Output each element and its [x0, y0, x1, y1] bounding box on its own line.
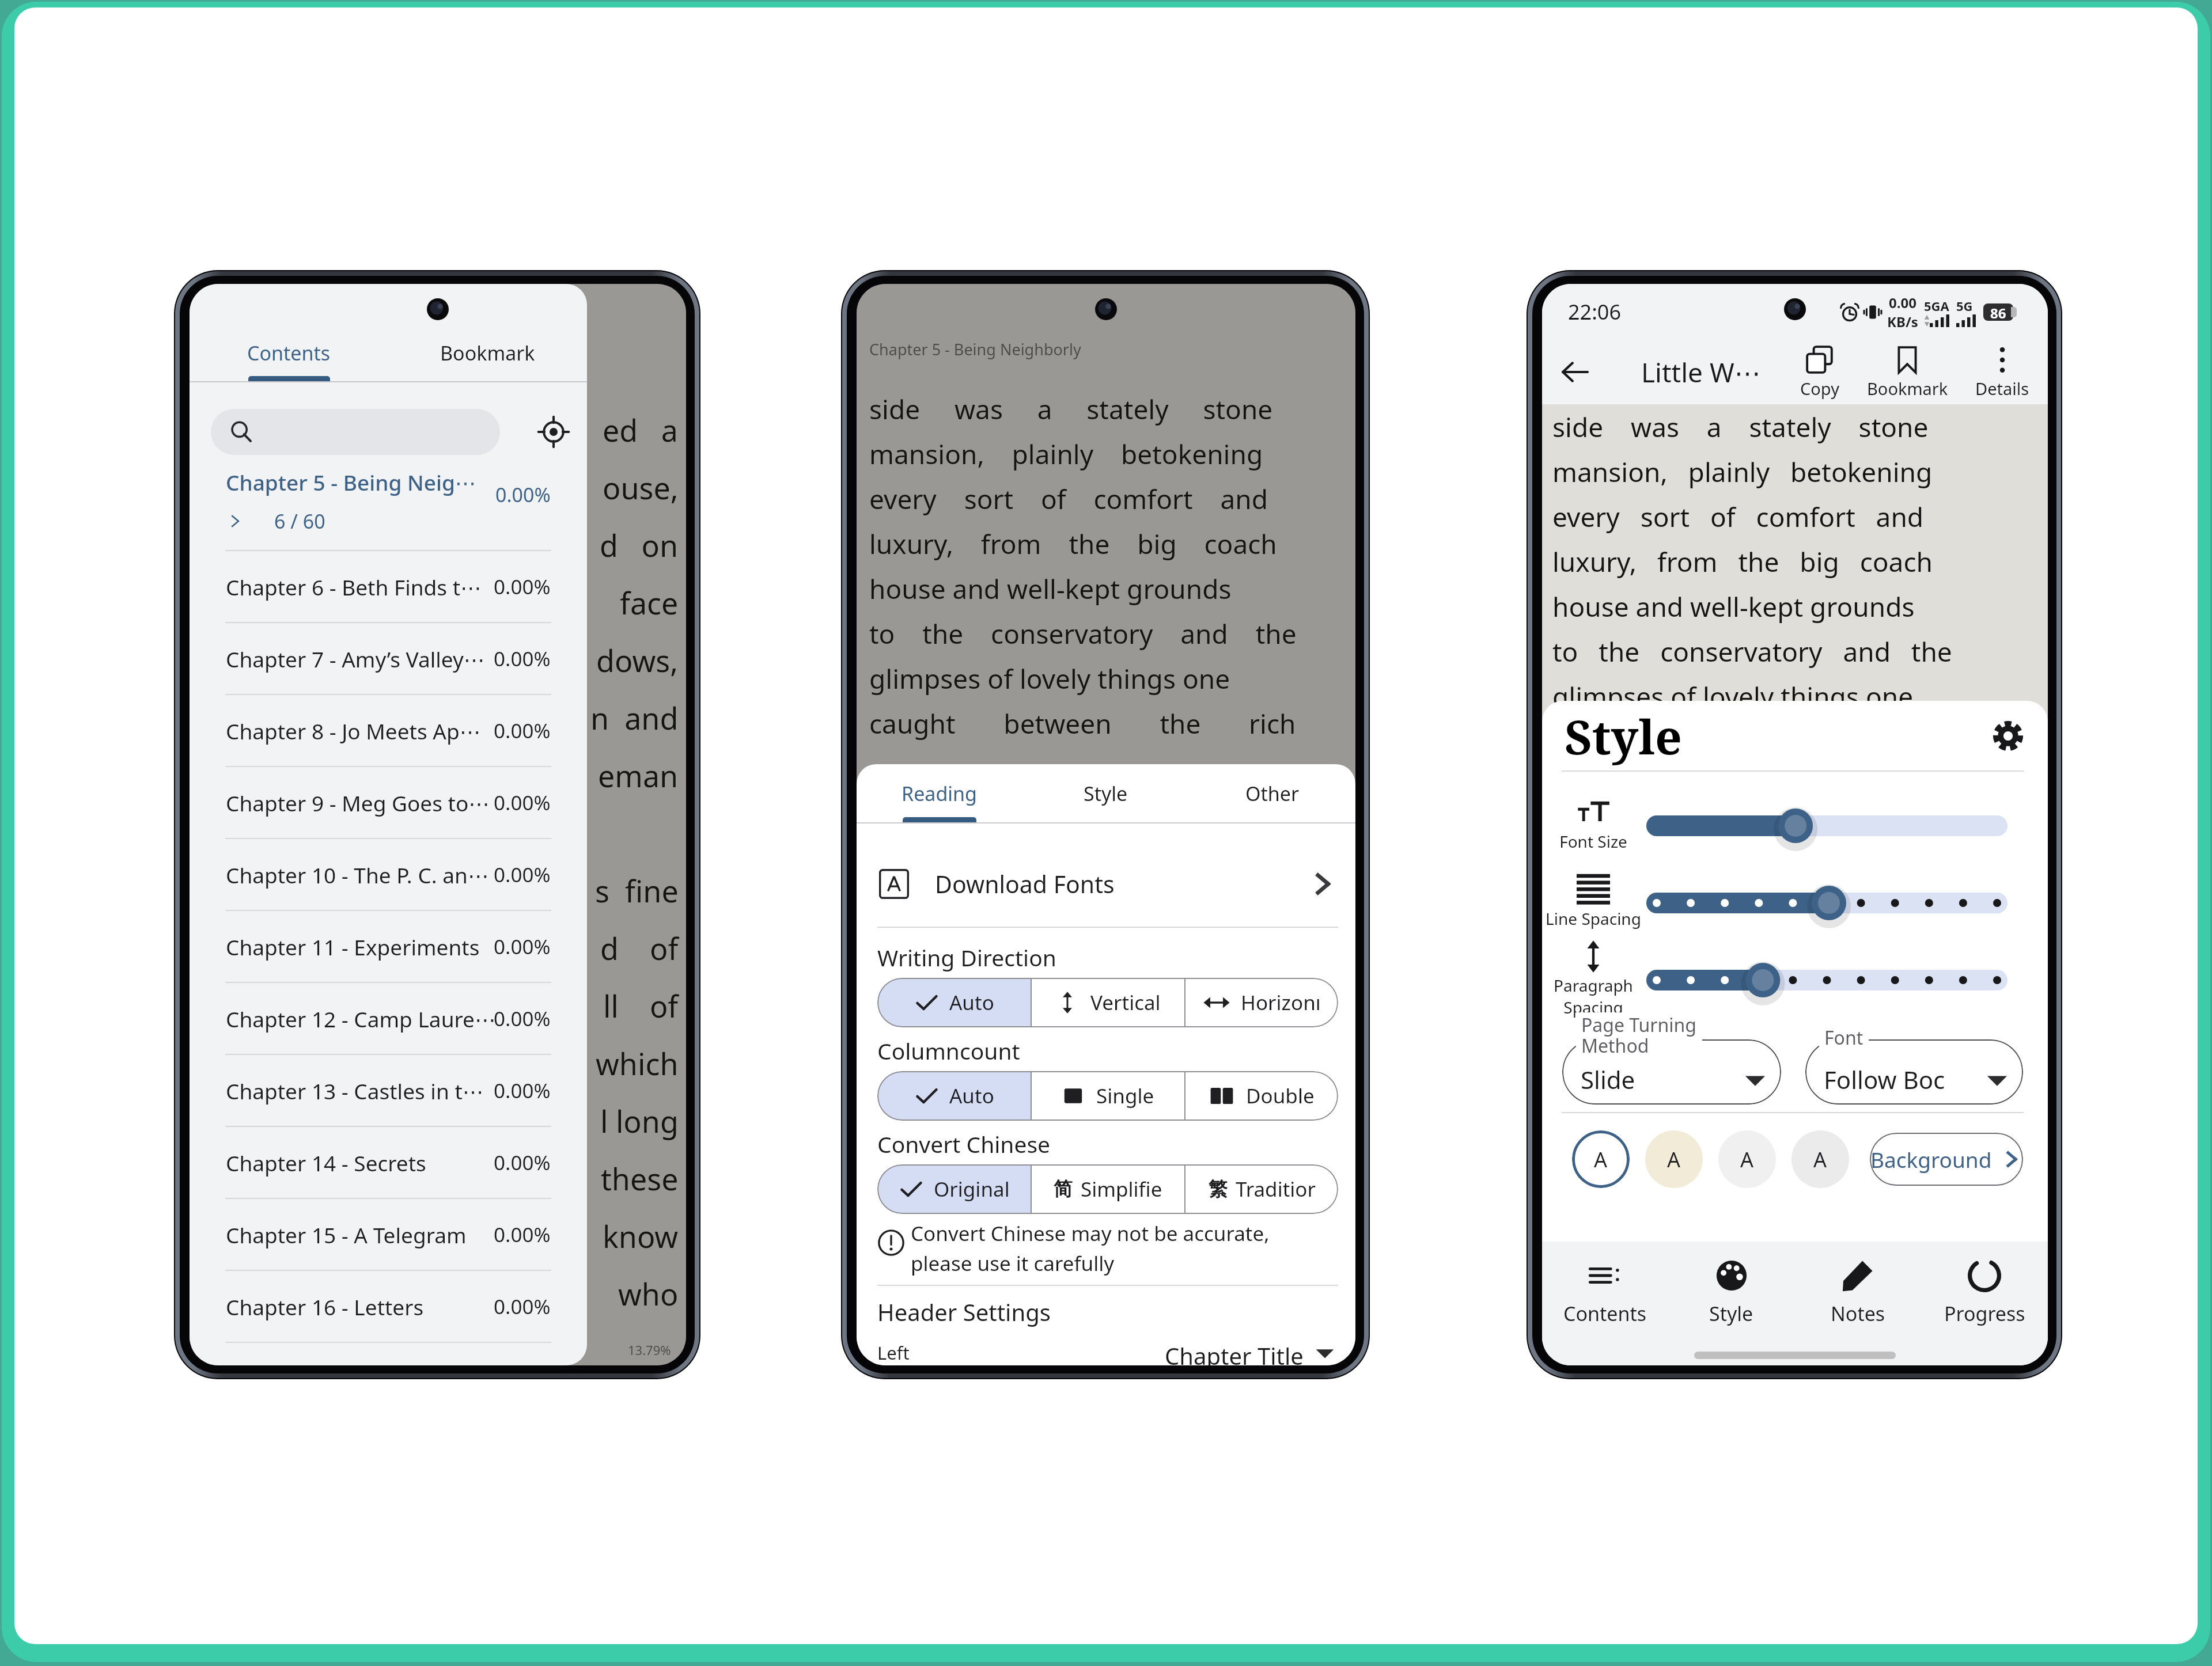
button[interactable]: Bookmark: [1855, 345, 1959, 400]
staticText: know: [603, 1216, 679, 1257]
staticText: these: [601, 1158, 679, 1199]
button[interactable]: Background: [1870, 1133, 2023, 1186]
staticText: 0.00%: [494, 645, 551, 673]
button[interactable]: Chapter 14 - Secrets: [190, 1127, 587, 1198]
button[interactable]: Chapter 15 - A Telegram: [190, 1199, 587, 1270]
staticText: 13.79%: [628, 1341, 671, 1358]
button[interactable]: Slide: [1562, 1039, 1781, 1105]
button[interactable]: Chapter 16 - Letters: [190, 1271, 587, 1342]
staticText: luxury, from the big coach: [1552, 544, 1933, 580]
staticText: Progress: [1944, 1300, 2025, 1327]
button[interactable]: Vertical: [1032, 978, 1184, 1027]
staticText: Chapter 6 - Beth Finds t⋯: [226, 572, 482, 601]
button[interactable]: Other: [1189, 764, 1355, 822]
staticText: every sort of comfort and: [869, 481, 1268, 517]
button[interactable]: Chapter 13 - Castles in t⋯: [190, 1055, 587, 1126]
staticText: Chapter 8 - Jo Meets Ap⋯: [226, 716, 481, 745]
button[interactable]: Chapter 9 - Meg Goes to⋯: [190, 767, 587, 838]
button[interactable]: Chapter 11 - Experiments: [190, 911, 587, 982]
button[interactable]: Download Fonts: [857, 859, 1355, 909]
button[interactable]: Style: [1022, 764, 1189, 822]
button[interactable]: Reading: [857, 764, 1022, 822]
staticText: 0.00%: [494, 1221, 551, 1248]
staticText: l long: [600, 1100, 679, 1141]
button[interactable]: Chapter 10 - The P. C. an⋯: [190, 839, 587, 910]
staticText: Chapter 14 - Secrets: [226, 1148, 426, 1177]
staticText: side was a stately stone: [1552, 409, 1929, 445]
button[interactable]: Chapter 6 - Beth Finds t⋯: [190, 551, 587, 622]
button[interactable]: Follow Boc: [1805, 1039, 2023, 1105]
button[interactable]: Style: [1668, 1259, 1794, 1327]
button[interactable]: Auto: [877, 978, 1031, 1027]
button[interactable]: Progress: [1921, 1259, 2048, 1327]
button[interactable]: Contents: [190, 324, 388, 381]
button[interactable]: Original: [877, 1164, 1031, 1214]
button[interactable]: Chapter 8 - Jo Meets Ap⋯: [190, 695, 587, 766]
staticText: Chapter 11 - Experiments: [226, 932, 480, 961]
staticText: 0.00%: [495, 481, 551, 508]
button[interactable]: 简: [1032, 1164, 1184, 1214]
button[interactable]: Chapter 7 - Amy’s Valley⋯: [190, 623, 587, 694]
staticText: eman: [598, 755, 679, 796]
button[interactable]: A: [1572, 1130, 1630, 1188]
staticText: A: [1667, 1145, 1681, 1174]
button[interactable]: Notes: [1794, 1259, 1921, 1327]
staticText: house and well-kept grounds: [869, 571, 1232, 607]
staticText: mansion, plainly betokening: [869, 436, 1263, 472]
button[interactable]: A: [1645, 1130, 1703, 1188]
staticText: Contents: [1563, 1300, 1647, 1327]
staticText: Horizonı: [1241, 989, 1321, 1016]
button[interactable]: Locate: [537, 416, 570, 448]
button[interactable]: Single: [1032, 1071, 1184, 1121]
button[interactable]: [211, 409, 500, 455]
staticText: Auto: [949, 989, 994, 1016]
staticText: to the conservatory and the: [869, 616, 1297, 652]
staticText: 6 / 60: [274, 508, 325, 534]
staticText: mansion, plainly betokening: [1552, 454, 1933, 490]
staticText: Chapter 9 - Meg Goes to⋯: [226, 788, 490, 817]
button[interactable]: Horizonı: [1185, 978, 1338, 1027]
staticText: 简: [1054, 1177, 1073, 1201]
button[interactable]: Chapter 12 - Camp Laure⋯: [190, 983, 587, 1054]
staticText: A: [1813, 1145, 1827, 1174]
staticText: A: [1594, 1145, 1608, 1174]
staticText: Chapter 12 - Camp Laure⋯: [226, 1004, 496, 1033]
staticText: who: [618, 1273, 679, 1314]
button[interactable]: Details: [1959, 345, 2046, 400]
staticText: 0.00%: [494, 861, 551, 889]
button[interactable]: Back: [1558, 355, 1592, 389]
staticText: Convert Chinese may not be accurate,: [911, 1220, 1270, 1247]
staticText: 0.00%: [494, 573, 551, 601]
button[interactable]: 繁: [1185, 1164, 1338, 1214]
staticText: Chapter 7 - Amy’s Valley⋯: [226, 644, 485, 673]
staticText: Page Turning Method: [1581, 1012, 1697, 1058]
staticText: 22:06: [1568, 298, 1622, 326]
staticText: Chapter Title: [1165, 1340, 1304, 1365]
staticText: 0.00%: [494, 1293, 551, 1320]
staticText: 0.00%: [494, 933, 551, 961]
staticText: Font Size: [1542, 830, 1674, 852]
staticText: glimpses of lovely things one: [869, 661, 1230, 697]
staticText: Chapter 13 - Castles in t⋯: [226, 1076, 484, 1105]
staticText: Simplifie: [1081, 1175, 1162, 1203]
staticText: d of: [600, 928, 679, 969]
staticText: KB/s: [1887, 312, 1918, 331]
button[interactable]: Bookmark: [388, 324, 587, 381]
button[interactable]: A: [1791, 1130, 1849, 1188]
button[interactable]: Copy: [1784, 345, 1855, 400]
staticText: 5G: [1956, 297, 1973, 314]
staticText: please use it carefully: [911, 1250, 1115, 1277]
staticText: Background: [1870, 1145, 1992, 1174]
button[interactable]: Settings: [1993, 721, 2023, 751]
staticText: glimpses of lovely things one: [1552, 678, 1914, 715]
staticText: 繁: [1209, 1177, 1228, 1201]
staticText: Double: [1246, 1082, 1315, 1110]
staticText: 86: [1990, 303, 2006, 321]
staticText: Font: [1824, 1025, 1863, 1050]
staticText: n and: [590, 697, 679, 738]
button[interactable]: Contents: [1542, 1259, 1668, 1327]
button[interactable]: Double: [1185, 1071, 1338, 1121]
button[interactable]: Auto: [877, 1071, 1031, 1121]
button[interactable]: A: [1718, 1130, 1776, 1188]
button[interactable]: Chapter 5 - Being Neig⋯: [190, 465, 587, 550]
